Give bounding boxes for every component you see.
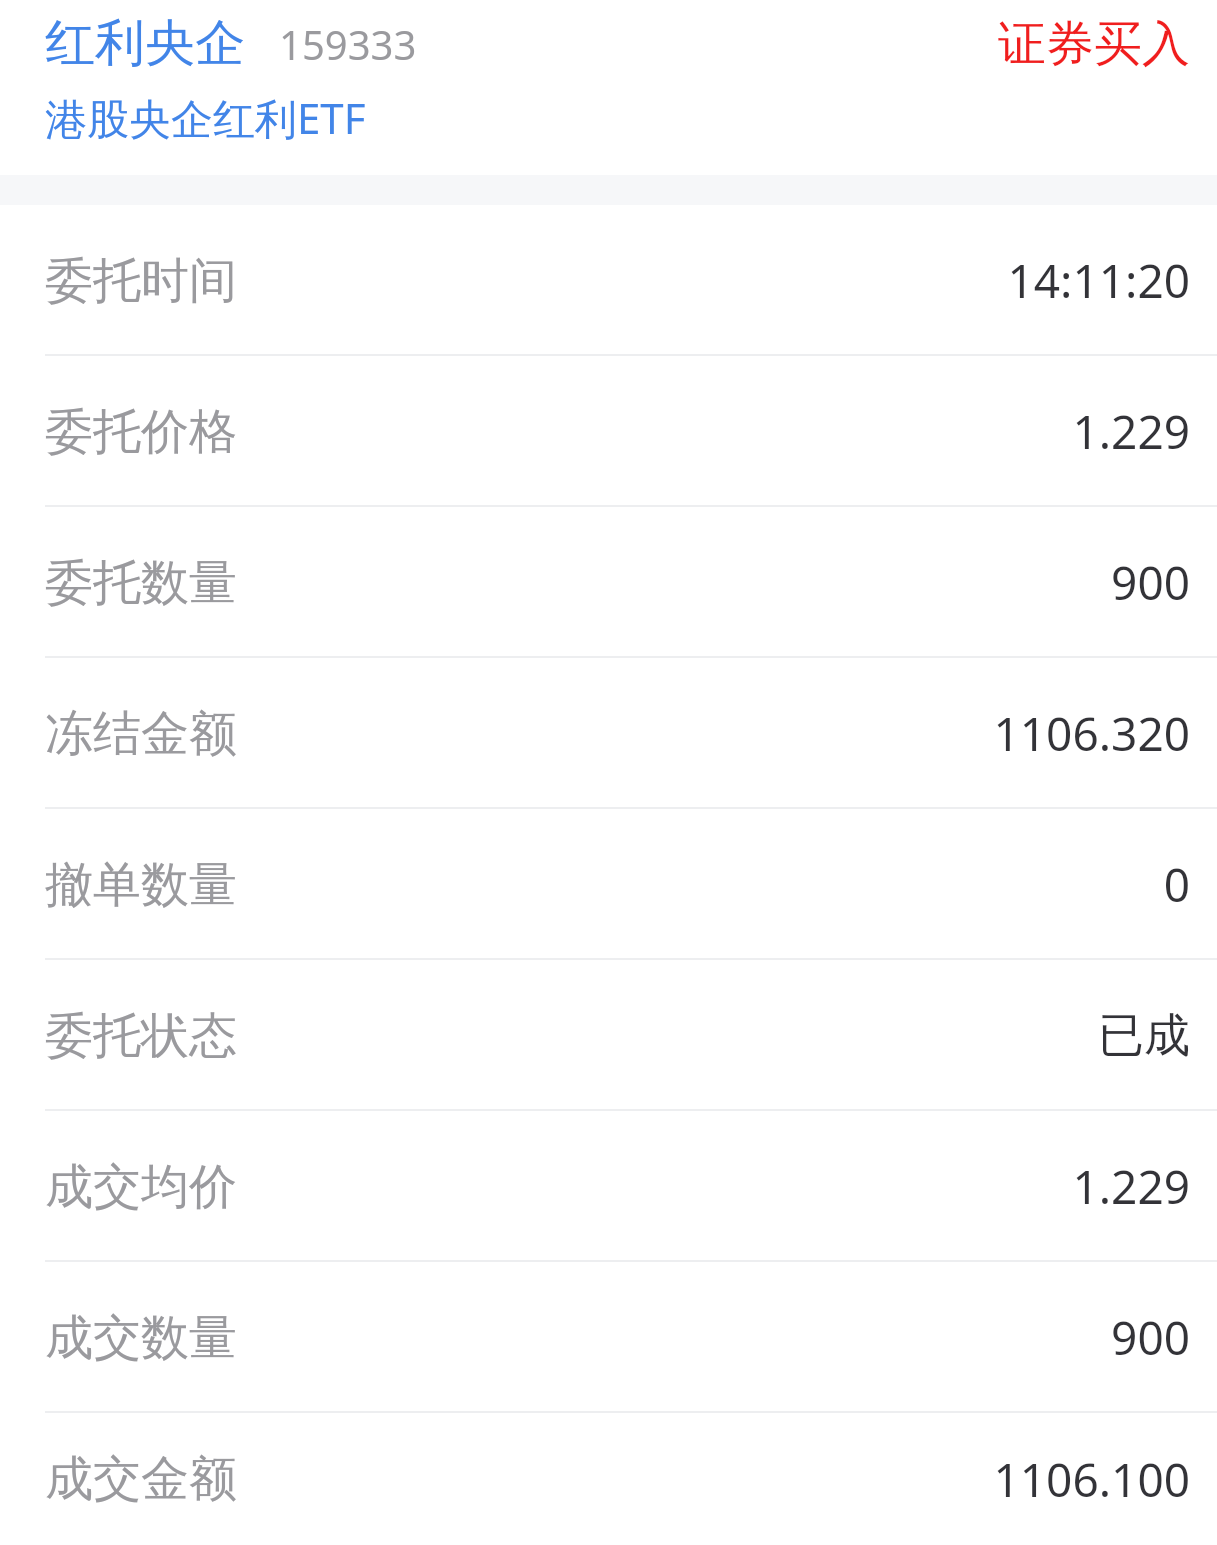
staticText: 14:11:20 (1007, 249, 1190, 312)
staticText: 1106.320 (993, 702, 1190, 765)
button[interactable]: 成交金额 (0, 1413, 1217, 1545)
button[interactable]: 撤单数量 (0, 809, 1217, 960)
staticText: 1.229 (1072, 400, 1190, 463)
staticText: 证券买入 (425, 14, 1190, 74)
staticText: 成交均价 (45, 1157, 237, 1217)
staticText: 成交金额 (45, 1449, 237, 1509)
staticText: 0 (1163, 853, 1190, 916)
button[interactable]: 委托时间 (0, 205, 1217, 356)
button[interactable]: 成交均价 (0, 1111, 1217, 1262)
button[interactable]: 成交数量 (0, 1262, 1217, 1413)
staticText: 委托时间 (45, 251, 237, 311)
button[interactable]: 委托状态 (0, 960, 1217, 1111)
staticText: 委托价格 (45, 402, 237, 462)
button[interactable]: 冻结金额 (0, 658, 1217, 809)
staticText: 成交数量 (45, 1308, 237, 1368)
button[interactable]: 红利央企 (0, 0, 1217, 175)
staticText: 1.229 (1072, 1155, 1190, 1218)
staticText: 港股央企红利ETF (45, 89, 366, 146)
staticText: 委托状态 (45, 1006, 237, 1066)
staticText: 900 (1111, 1306, 1190, 1369)
button[interactable]: 委托数量 (0, 507, 1217, 658)
staticText: 1106.100 (993, 1448, 1190, 1511)
staticText: 撤单数量 (45, 855, 237, 915)
staticText: 委托数量 (45, 553, 237, 613)
staticText: 已成 (1098, 1007, 1190, 1065)
button[interactable]: 委托价格 (0, 356, 1217, 507)
staticText: 冻结金额 (45, 704, 237, 764)
staticText: 159333 (279, 17, 417, 71)
staticText: 900 (1111, 551, 1190, 614)
staticText: 红利央企 (45, 12, 245, 75)
